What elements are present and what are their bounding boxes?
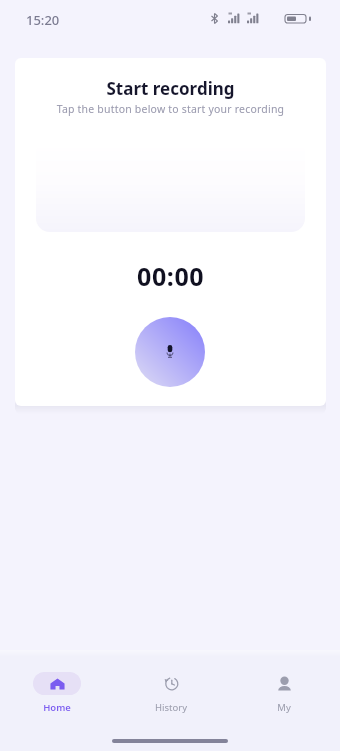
- staticText: My: [277, 701, 291, 714]
- staticText: 00:00: [137, 259, 205, 293]
- button[interactable]: Home: [0, 672, 114, 714]
- staticText: Tap the button below to start your recor…: [15, 102, 326, 116]
- staticText: Start recording: [15, 77, 326, 100]
- staticText: 15:20: [26, 11, 60, 29]
- staticText: History: [155, 701, 187, 714]
- button[interactable]: My: [227, 672, 340, 714]
- staticText: Home: [43, 701, 71, 714]
- button[interactable]: History: [114, 672, 227, 714]
- button[interactable]: Start recording: [135, 317, 205, 387]
